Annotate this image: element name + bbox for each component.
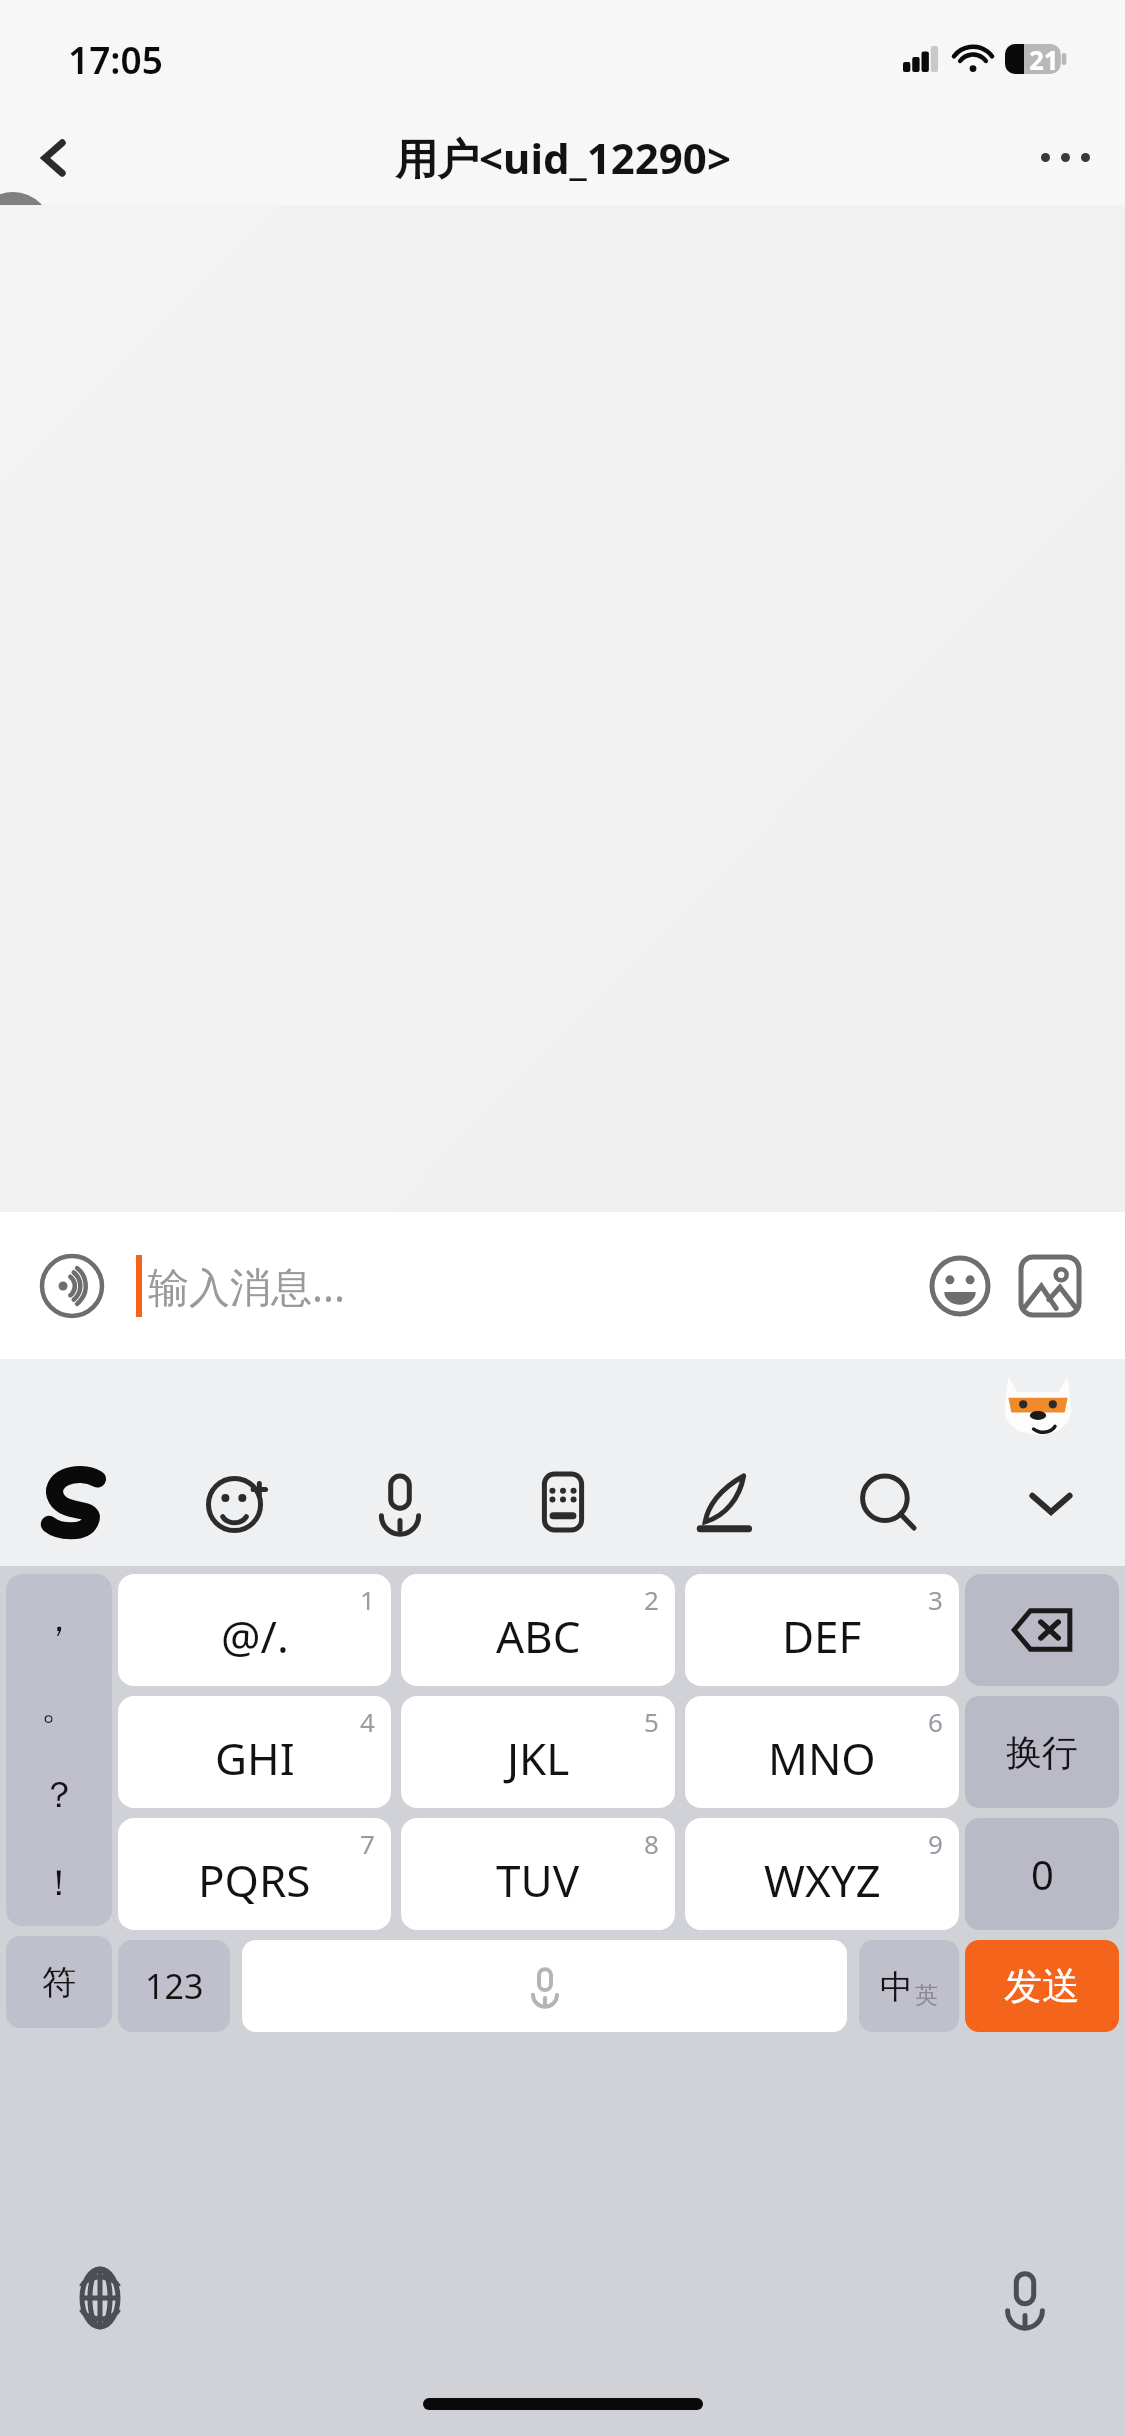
button[interactable]: 4 — [118, 1696, 391, 1808]
staticText: 21 — [1029, 42, 1059, 77]
button[interactable]: 7 — [118, 1818, 391, 1930]
staticText: ！ — [41, 1860, 77, 1905]
button[interactable]: 发送 — [965, 1940, 1119, 2032]
staticText: JKL — [507, 1728, 570, 1788]
staticText: 5 — [644, 1704, 659, 1739]
staticText: 用户<uid_12290> — [395, 129, 731, 186]
button[interactable]: Voice typing — [983, 2256, 1067, 2340]
button[interactable]: Emoji — [915, 1241, 1005, 1331]
button[interactable]: 符 — [6, 1936, 112, 2028]
staticText: 3 — [928, 1582, 943, 1617]
button[interactable]: Keyboard layouts — [513, 1452, 613, 1552]
button[interactable]: 中 — [859, 1940, 959, 2032]
staticText: ， — [41, 1596, 77, 1641]
button[interactable]: Change language — [58, 2256, 142, 2340]
staticText: 2 — [644, 1582, 659, 1617]
staticText: WXYZ — [764, 1850, 881, 1910]
button[interactable]: 0 — [965, 1818, 1119, 1930]
button[interactable]: Stickers — [187, 1452, 287, 1552]
staticText: MNO — [768, 1728, 876, 1788]
button[interactable]: Voice input — [30, 1244, 114, 1328]
staticText: TUV — [496, 1850, 580, 1910]
button[interactable]: ， — [6, 1574, 112, 1926]
button[interactable]: Assistant — [1001, 1365, 1075, 1447]
staticText: 4 — [360, 1704, 375, 1739]
staticText: 1 — [360, 1582, 375, 1617]
button[interactable]: 输入消息... — [136, 1212, 915, 1359]
button[interactable]: 换行 — [965, 1696, 1119, 1808]
button[interactable]: Handwriting — [675, 1452, 775, 1552]
staticText: 0 — [1031, 1847, 1054, 1901]
staticText: 8 — [644, 1826, 659, 1861]
staticText: 符 — [42, 1961, 76, 2004]
staticText: 7 — [360, 1826, 375, 1861]
staticText: 6 — [928, 1704, 943, 1739]
staticText: @/. — [221, 1606, 289, 1666]
button[interactable]: 8 — [401, 1818, 675, 1930]
button[interactable]: Voice — [350, 1452, 450, 1552]
staticText: ？ — [41, 1772, 77, 1817]
staticText: 17:05 — [68, 34, 163, 84]
staticText: DEF — [782, 1606, 862, 1666]
button[interactable]: 1 — [118, 1574, 391, 1686]
staticText: 换行 — [1006, 1730, 1078, 1775]
staticText: 中 — [880, 1966, 913, 2008]
button[interactable]: 2 — [401, 1574, 675, 1686]
staticText: 发送 — [1004, 1962, 1080, 2010]
button[interactable]: 3 — [685, 1574, 959, 1686]
button[interactable]: Search — [838, 1452, 938, 1552]
button[interactable]: 123 — [118, 1940, 230, 2032]
button[interactable]: Send image — [1005, 1241, 1095, 1331]
staticText: 123 — [145, 1963, 204, 2009]
staticText: GHI — [215, 1728, 295, 1788]
staticText: 。 — [41, 1684, 77, 1729]
button[interactable]: Space — [242, 1940, 847, 2032]
staticText: PQRS — [198, 1850, 311, 1910]
button[interactable]: 5 — [401, 1696, 675, 1808]
button[interactable]: More options — [1005, 110, 1125, 205]
button[interactable]: 9 — [685, 1818, 959, 1930]
staticText: 9 — [928, 1826, 943, 1861]
button[interactable]: Expand panel — [0, 192, 52, 284]
staticText: 英 — [915, 1981, 938, 2010]
button[interactable]: Hide keyboard — [1001, 1452, 1101, 1552]
button[interactable]: Backspace — [965, 1574, 1119, 1686]
button[interactable]: Back — [0, 110, 110, 205]
staticText: 输入消息... — [148, 1258, 345, 1314]
button[interactable]: 6 — [685, 1696, 959, 1808]
staticText: ABC — [496, 1606, 581, 1666]
button[interactable]: Sogou — [24, 1452, 124, 1552]
